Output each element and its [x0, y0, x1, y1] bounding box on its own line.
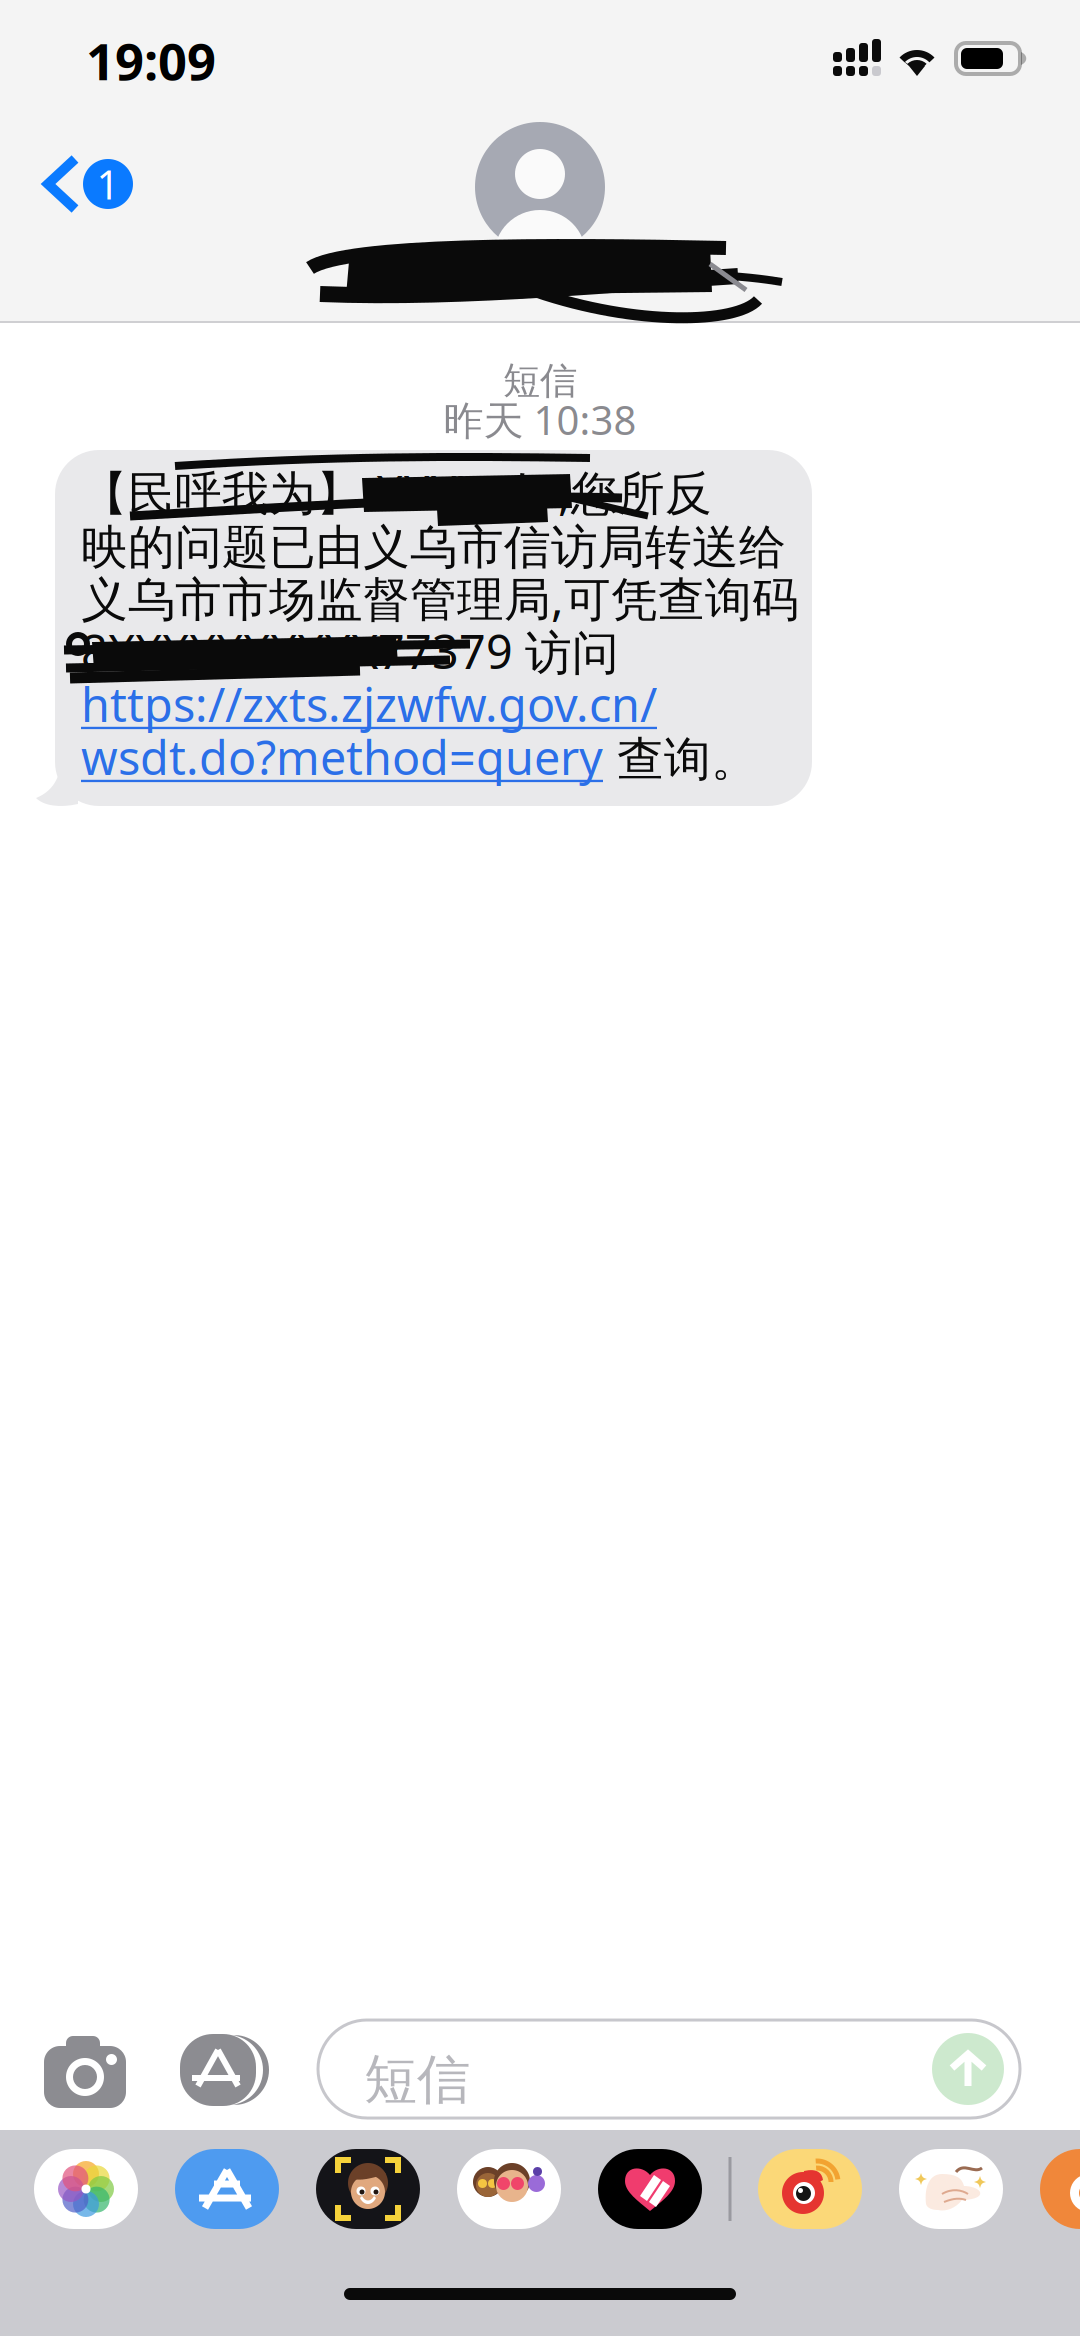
staticText: wsdt.do?method=query: [81, 726, 603, 788]
button[interactable]: Sticker pack: [880, 2145, 1021, 2233]
staticText: 短信: [364, 2047, 470, 2112]
button[interactable]: App Store: [156, 2145, 297, 2233]
button[interactable]: Memoji: [297, 2145, 438, 2233]
button[interactable]: Fitness: [579, 2145, 720, 2233]
staticText: 昨天 10:38: [443, 393, 636, 446]
button[interactable]: Stickers: [438, 2145, 579, 2233]
button[interactable]: Photos: [15, 2145, 156, 2233]
staticText: 义乌市市场监督管理局,可凭查询码: [81, 567, 799, 629]
button[interactable]: UC Browser: [1021, 2145, 1080, 2233]
button[interactable]: Back: [17, 127, 159, 241]
staticText: 8XXXXXXXXXX77379 访问: [81, 620, 619, 682]
button[interactable]: Send: [924, 2025, 1012, 2113]
staticText: https://zxts.zjzwfw.gov.cn/: [81, 673, 657, 735]
staticText: 短信: [503, 358, 577, 404]
button[interactable]: Weibo: [739, 2145, 880, 2233]
button[interactable]: Apps: [158, 2010, 298, 2130]
staticText: 【民呼我为】:XXXXX好,您所反: [81, 461, 712, 523]
staticText: 查询。: [603, 731, 758, 788]
staticText: 映的问题已由义乌市信访局转送给: [81, 519, 786, 576]
button[interactable]: Camera: [22, 2010, 160, 2130]
staticText: 1: [96, 157, 119, 210]
button[interactable]: Contact details: [405, 116, 675, 312]
staticText: 19:09: [86, 27, 216, 94]
